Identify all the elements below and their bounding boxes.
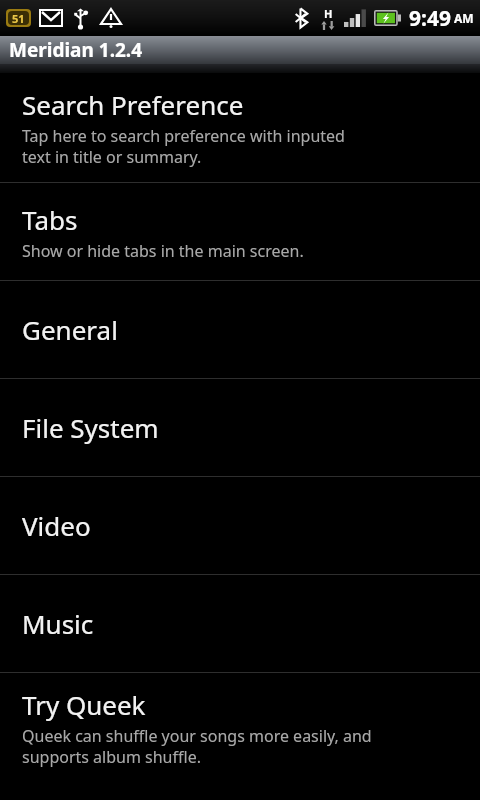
button[interactable]: Tabs: [0, 183, 480, 280]
button[interactable]: Music: [0, 575, 480, 672]
button[interactable]: Video: [0, 477, 480, 574]
button[interactable]: Search Preference: [0, 73, 480, 182]
staticText: Try Queek: [22, 687, 146, 722]
staticText: Meridian 1.2.4: [9, 37, 143, 63]
staticText: H: [324, 6, 333, 21]
staticText: Search Preference: [22, 87, 244, 122]
staticText: General: [22, 312, 118, 347]
staticText: Queek can shuffle your songs more easily…: [22, 725, 372, 768]
staticText: File System: [22, 410, 159, 445]
button[interactable]: Try Queek: [0, 673, 480, 782]
staticText: AM: [454, 10, 474, 26]
staticText: 9:49: [409, 4, 451, 33]
button[interactable]: File System: [0, 379, 480, 476]
staticText: Show or hide tabs in the main screen.: [22, 240, 304, 262]
staticText: Tap here to search preference with input…: [22, 125, 345, 168]
staticText: Video: [22, 508, 91, 543]
staticText: 51: [12, 11, 25, 26]
staticText: Tabs: [22, 202, 78, 237]
button[interactable]: General: [0, 281, 480, 378]
staticText: Music: [22, 606, 94, 641]
